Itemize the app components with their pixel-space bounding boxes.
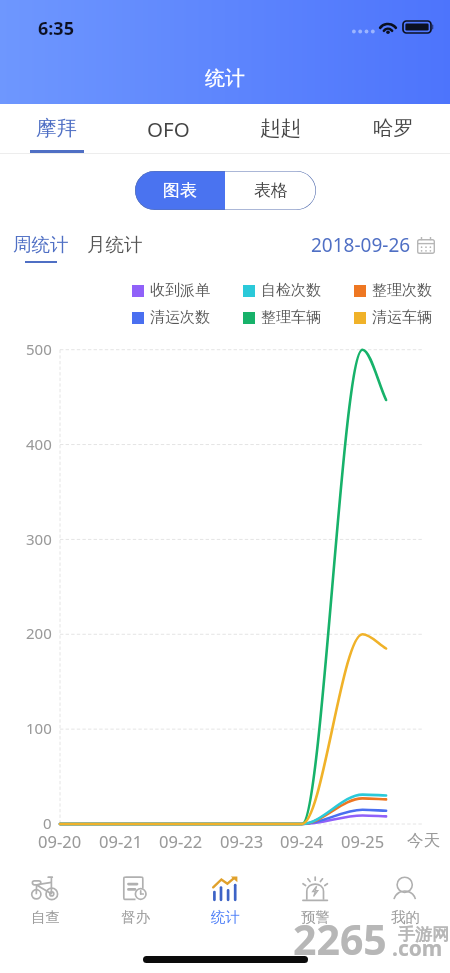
staticText: 清运次数 <box>150 308 210 327</box>
staticText: 督办 <box>121 908 150 926</box>
other: Self check <box>31 874 59 902</box>
button[interactable]: Profile <box>360 866 450 926</box>
staticText: 清运车辆 <box>372 308 432 327</box>
staticText: 09-23 <box>220 830 264 852</box>
staticText: 周统计 <box>13 233 69 256</box>
other: Profile <box>391 874 419 902</box>
staticText: 300 <box>26 529 52 549</box>
staticText: 我的 <box>391 908 420 926</box>
staticText: 200 <box>26 623 52 643</box>
staticText: 预警 <box>301 908 330 926</box>
button[interactable]: 2018-09-26 <box>311 232 435 258</box>
staticText: 统计 <box>205 66 245 91</box>
staticText: 自查 <box>31 908 60 926</box>
button[interactable]: OFO <box>112 104 224 154</box>
staticText: .com <box>392 934 443 963</box>
button[interactable]: 月统计 <box>87 233 143 256</box>
button[interactable]: Self check <box>0 866 90 926</box>
button[interactable]: 图表 <box>135 171 225 210</box>
staticText: 手游网 <box>398 924 449 945</box>
button[interactable]: Supervise <box>90 866 180 926</box>
button[interactable]: 表格 <box>225 171 316 210</box>
staticText: 统计 <box>211 908 240 926</box>
staticText: 100 <box>26 718 52 738</box>
staticText: 月统计 <box>87 233 143 256</box>
staticText: 6:35 <box>38 16 74 41</box>
button[interactable]: 摩拜 <box>0 104 112 154</box>
other: Calendar <box>417 237 435 254</box>
staticText: 摩拜 <box>36 115 77 141</box>
staticText: 09-25 <box>341 830 385 852</box>
other: Alerts <box>301 874 329 902</box>
staticText: 500 <box>26 339 52 359</box>
button[interactable]: 哈罗 <box>337 104 450 154</box>
staticText: 2265 <box>293 911 387 967</box>
staticText: 09-21 <box>99 830 143 852</box>
staticText: 哈罗 <box>373 115 414 141</box>
staticText: 09-22 <box>159 830 203 852</box>
button[interactable]: Alerts <box>270 866 360 926</box>
other: Supervise <box>121 874 149 902</box>
staticText: 0 <box>43 813 52 833</box>
staticText: 图表 <box>163 180 197 201</box>
staticText: 今天 <box>407 830 440 851</box>
staticText: 400 <box>26 434 52 454</box>
staticText: 09-24 <box>280 830 324 852</box>
staticText: 自检次数 <box>261 281 321 300</box>
button[interactable]: 周统计 <box>13 233 69 263</box>
staticText: 整理次数 <box>372 281 432 300</box>
button[interactable]: Statistics <box>180 866 270 926</box>
button[interactable]: 赳赳 <box>224 104 337 154</box>
staticText: 表格 <box>254 180 288 201</box>
staticText: 09-20 <box>38 830 82 852</box>
other: Statistics <box>211 874 239 902</box>
staticText: 赳赳 <box>260 115 301 141</box>
staticText: 整理车辆 <box>261 308 321 327</box>
staticText: 收到派单 <box>150 281 210 300</box>
staticText: OFO <box>147 115 190 143</box>
staticText: 2018-09-26 <box>311 232 411 258</box>
